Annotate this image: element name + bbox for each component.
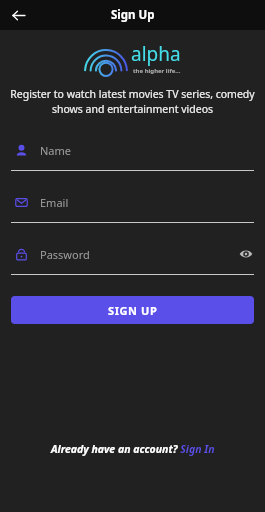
staticText: Password: [40, 247, 90, 262]
staticText: Sign Up: [111, 7, 155, 23]
button[interactable]: Name: [11, 138, 254, 171]
button[interactable]: Email: [11, 190, 254, 223]
staticText: Email: [40, 195, 69, 210]
button[interactable]: SIGN UP: [11, 296, 254, 324]
staticText: Register to watch latest movies TV serie…: [8, 87, 257, 116]
button[interactable]: Already have an account? Sign In: [45, 436, 221, 462]
staticText: SIGN UP: [108, 303, 158, 318]
staticText: alpha: [131, 41, 181, 67]
staticText: Name: [40, 143, 72, 158]
button[interactable]: Show password: [238, 246, 254, 262]
staticText: the higher life...: [133, 67, 181, 75]
button[interactable]: Back: [6, 3, 30, 27]
button[interactable]: Password: [11, 242, 254, 275]
